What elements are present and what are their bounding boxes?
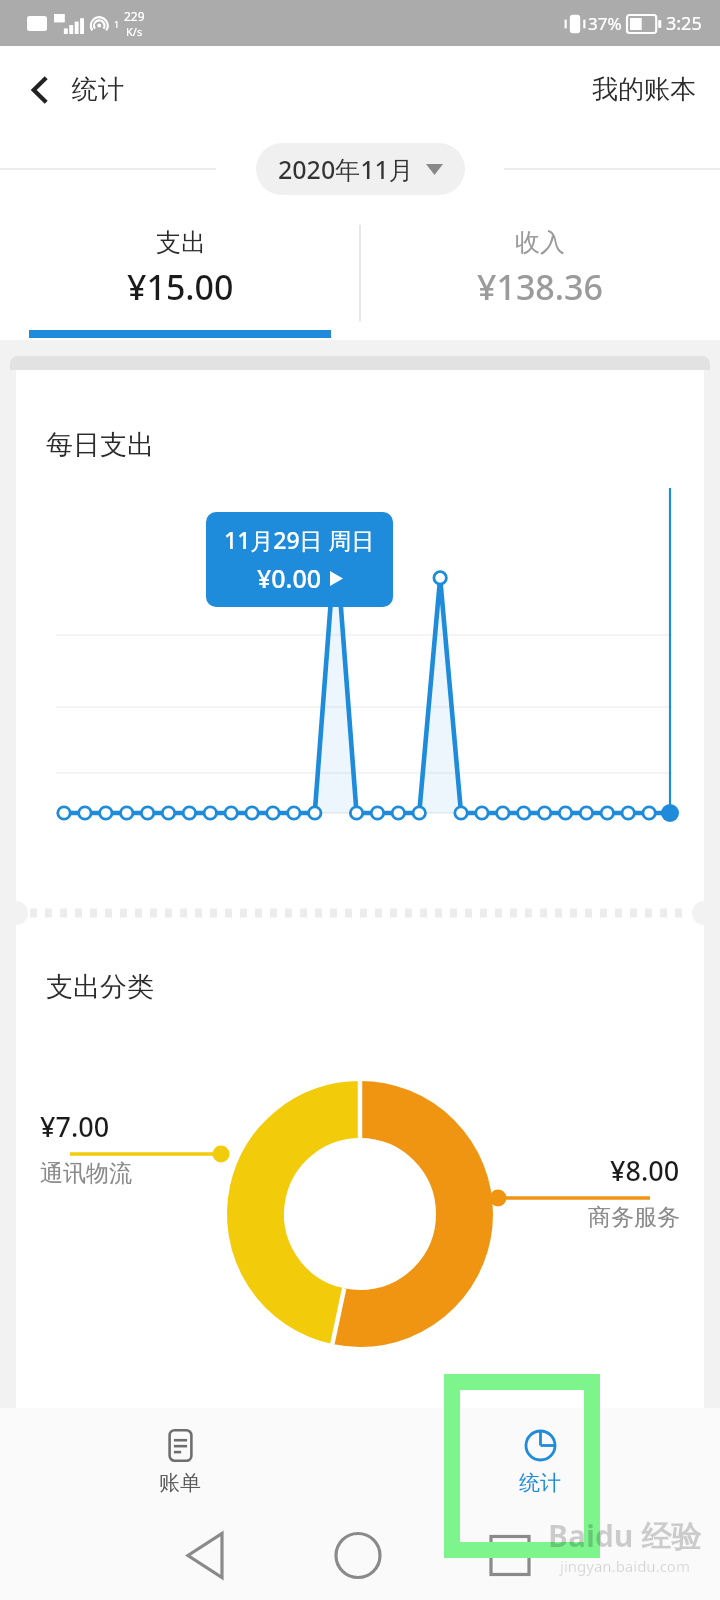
button[interactable]: 统计 — [360, 1408, 720, 1516]
button[interactable]: 支出 — [0, 206, 360, 340]
staticText: 每日支出 — [46, 428, 154, 462]
staticText: ¥0.00 — [257, 561, 322, 595]
staticText: 229 — [124, 8, 145, 24]
staticText: Baidu 经验 — [548, 1515, 702, 1556]
staticText: jingyan.baidu.com — [560, 1556, 690, 1576]
staticText: 支出 — [156, 227, 206, 258]
staticText: 37% — [588, 12, 622, 35]
staticText: 11月29日 周日 — [224, 524, 375, 555]
button[interactable]: 2020年11月 — [256, 143, 465, 195]
button[interactable]: 收入 — [360, 206, 720, 340]
button[interactable]: 账单 — [0, 1408, 360, 1516]
button[interactable]: Back — [0, 63, 144, 116]
other: Back — [28, 74, 54, 106]
staticText: 3:25 — [666, 11, 702, 36]
staticText: 1 — [114, 18, 120, 30]
button[interactable]: 11月29日 周日 — [206, 512, 393, 607]
staticText: K/s — [126, 24, 143, 39]
staticText: 2020年11月 — [278, 152, 414, 186]
staticText: ¥138.36 — [477, 264, 603, 310]
staticText: ¥8.00 — [610, 1152, 680, 1189]
staticText: ¥15.00 — [127, 264, 234, 310]
staticText: ¥7.00 — [40, 1108, 110, 1145]
staticText: 我的账本 — [592, 73, 696, 106]
button[interactable]: 我的账本 — [568, 61, 720, 118]
staticText: 通讯物流 — [40, 1159, 132, 1188]
staticText: 统计 — [519, 1470, 561, 1496]
staticText: 统计 — [72, 73, 124, 106]
staticText: 商务服务 — [588, 1203, 680, 1232]
staticText: 支出分类 — [46, 970, 154, 1004]
staticText: 账单 — [159, 1470, 201, 1496]
staticText: 收入 — [515, 227, 565, 258]
